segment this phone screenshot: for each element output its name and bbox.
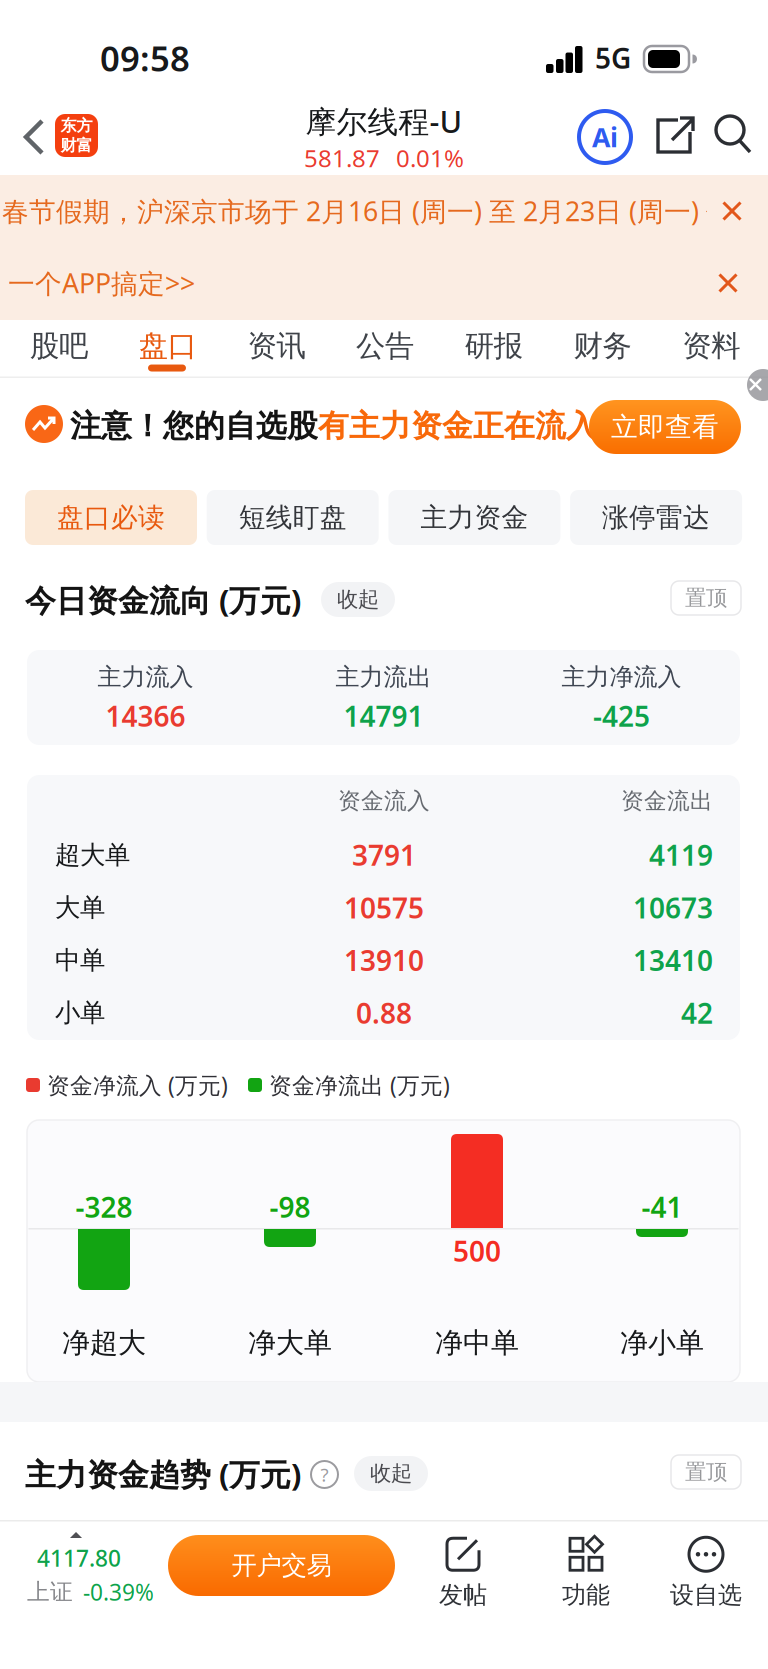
staticText: 5G bbox=[595, 39, 631, 77]
button[interactable]: Back bbox=[22, 115, 46, 159]
staticText: 超大单 bbox=[55, 839, 130, 870]
button[interactable]: 收起 bbox=[321, 582, 395, 617]
button[interactable]: 涨停雷达 bbox=[570, 490, 742, 545]
staticText: 发帖 bbox=[439, 1580, 487, 1610]
staticText: 42 bbox=[681, 994, 713, 1031]
button[interactable]: Dismiss bbox=[710, 265, 746, 301]
staticText: 财富 bbox=[60, 135, 92, 155]
staticText: 13910 bbox=[344, 942, 424, 979]
button[interactable]: 开户交易 bbox=[168, 1535, 395, 1596]
button[interactable]: 设自选 bbox=[670, 1536, 742, 1610]
staticText: 资金净流出 (万元) bbox=[269, 1070, 450, 1100]
staticText: 东方 bbox=[60, 116, 92, 135]
staticText: Ai bbox=[592, 119, 618, 155]
staticText: 资金流出 bbox=[621, 787, 713, 815]
staticText: 股吧 bbox=[30, 328, 88, 364]
button[interactable]: 财务 bbox=[557, 324, 647, 368]
staticText: 功能 bbox=[562, 1580, 610, 1610]
staticText: 14366 bbox=[105, 697, 185, 735]
button[interactable]: 资讯 bbox=[231, 324, 321, 368]
button[interactable]: Dismiss bbox=[714, 193, 750, 229]
button[interactable]: 发帖 bbox=[439, 1536, 487, 1610]
button[interactable]: Dismiss bbox=[747, 369, 768, 401]
staticText: 财务 bbox=[573, 328, 631, 364]
staticText: 置顶 bbox=[685, 585, 727, 611]
staticText: 3791 bbox=[352, 836, 416, 874]
staticText: 上证 bbox=[27, 1578, 73, 1606]
staticText: 资金流入 bbox=[338, 787, 430, 815]
staticText: 开户交易 bbox=[231, 1550, 331, 1581]
staticText: 注意！您的自选股 bbox=[70, 407, 318, 445]
staticText: 春节假期，沪深京市场于 2月16日 (周一) 至 2月23日 (周一) 休市 bbox=[2, 193, 760, 229]
button[interactable]: 置顶 bbox=[671, 1455, 741, 1489]
staticText: 4117.80 bbox=[37, 1543, 121, 1573]
button[interactable]: 公告 bbox=[340, 324, 430, 368]
button[interactable]: 主力资金 bbox=[388, 490, 560, 545]
staticText: -425 bbox=[593, 697, 650, 735]
button[interactable]: 4117.80 bbox=[27, 1526, 187, 1558]
button[interactable]: 置顶 bbox=[671, 581, 741, 615]
staticText: 收起 bbox=[370, 1460, 412, 1487]
button[interactable]: 收起 bbox=[354, 1456, 428, 1491]
button[interactable]: Share bbox=[652, 116, 696, 156]
button[interactable]: 盘口 bbox=[123, 324, 213, 368]
staticText: -41 bbox=[641, 1188, 682, 1226]
button[interactable]: 资料 bbox=[666, 324, 756, 368]
button[interactable]: Ai assistant bbox=[579, 111, 631, 163]
staticText: 盘口 bbox=[139, 328, 197, 364]
staticText: 主力流出 bbox=[335, 662, 431, 692]
staticText: 资料 bbox=[682, 328, 740, 364]
staticText: 4119 bbox=[649, 836, 713, 874]
staticText: 净小单 bbox=[620, 1326, 704, 1360]
staticText: 置顶 bbox=[685, 1459, 727, 1485]
button[interactable]: 东方财富 bbox=[55, 114, 98, 157]
staticText: 581.87 bbox=[304, 142, 380, 174]
staticText: 0.88 bbox=[356, 994, 412, 1031]
staticText: 净大单 bbox=[248, 1326, 332, 1360]
button[interactable]: 盘口必读 bbox=[25, 490, 197, 545]
staticText: 立即查看 bbox=[611, 411, 719, 443]
staticText: 主力资金趋势 (万元) bbox=[25, 1454, 301, 1494]
staticText: 主力资金 bbox=[420, 501, 528, 534]
staticText: 主力净流入 bbox=[561, 662, 681, 692]
button[interactable]: 股吧 bbox=[14, 324, 104, 368]
staticText: 中单 bbox=[55, 945, 105, 976]
button[interactable]: 短线盯盘 bbox=[207, 490, 379, 545]
staticText: 0.01% bbox=[396, 142, 464, 174]
staticText: 主力流入 bbox=[97, 662, 193, 692]
staticText: ? bbox=[320, 1462, 328, 1487]
staticText: 资金净流入 (万元) bbox=[47, 1070, 228, 1100]
button[interactable]: Search bbox=[712, 114, 754, 156]
staticText: 今日资金流向 (万元) bbox=[25, 580, 301, 620]
button[interactable]: 立即查看 bbox=[589, 400, 741, 454]
staticText: 短线盯盘 bbox=[239, 501, 347, 534]
staticText: 研报 bbox=[465, 328, 523, 364]
staticText: 设自选 bbox=[670, 1580, 742, 1610]
staticText: 10673 bbox=[633, 889, 713, 926]
staticText: 资讯 bbox=[247, 328, 305, 364]
staticText: 有主力资金正在流入 bbox=[318, 407, 597, 445]
staticText: -0.39% bbox=[83, 1577, 154, 1607]
staticText: -98 bbox=[269, 1188, 310, 1226]
staticText: 盘口必读 bbox=[57, 501, 165, 534]
staticText: 500 bbox=[453, 1232, 501, 1270]
staticText: 13410 bbox=[633, 942, 713, 979]
staticText: 涨停雷达 bbox=[602, 501, 710, 534]
button[interactable]: 研报 bbox=[449, 324, 539, 368]
staticText: 净中单 bbox=[435, 1326, 519, 1360]
staticText: -328 bbox=[75, 1188, 132, 1226]
staticText: 公告 bbox=[356, 328, 414, 364]
staticText: 净超大 bbox=[62, 1326, 146, 1360]
staticText: 收起 bbox=[337, 586, 379, 613]
button[interactable]: 功能 bbox=[562, 1536, 610, 1610]
staticText: 10575 bbox=[344, 889, 424, 926]
staticText: 摩尔线程-U bbox=[305, 101, 462, 141]
staticText: 小单 bbox=[55, 997, 105, 1028]
staticText: 大单 bbox=[55, 892, 105, 923]
staticText: 14791 bbox=[343, 697, 423, 735]
staticText: 09:58 bbox=[100, 35, 190, 81]
staticText: 一个APP搞定>> bbox=[8, 265, 195, 301]
